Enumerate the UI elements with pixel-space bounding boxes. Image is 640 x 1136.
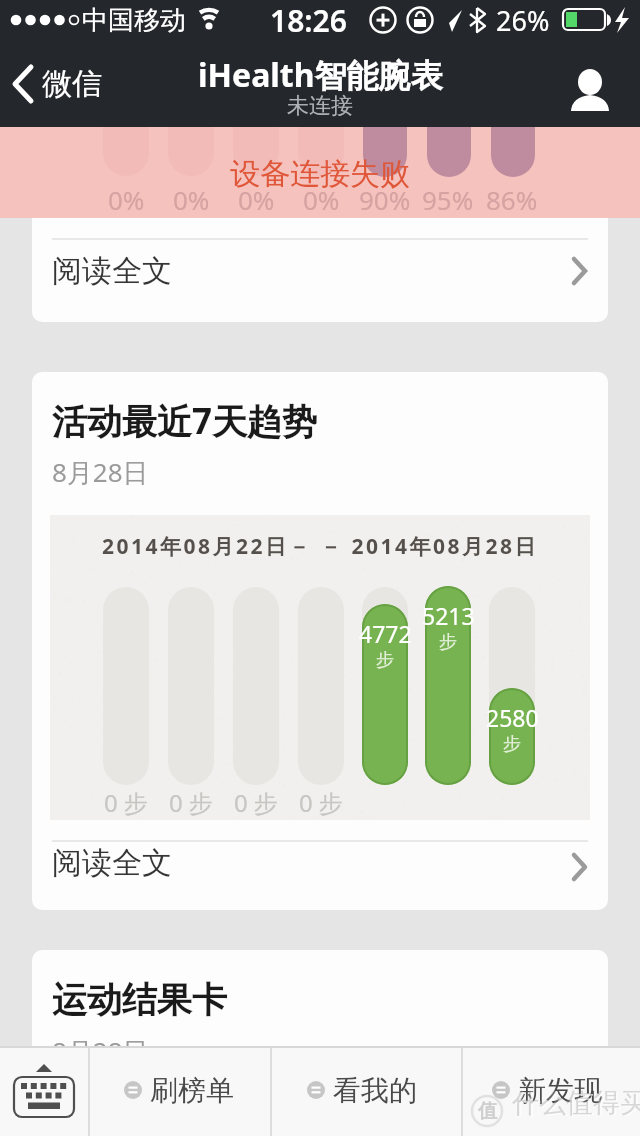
button[interactable]: 刷榜单 [123, 1058, 234, 1122]
staticText: 0% [238, 182, 275, 217]
staticText: 看我的 [333, 1073, 417, 1108]
staticText: 0 步 [234, 786, 278, 819]
staticText: 0% [173, 182, 210, 217]
button[interactable]: 阅读全文 [32, 842, 608, 894]
staticText: 步 [439, 631, 457, 654]
staticText: 2580 [486, 702, 539, 733]
staticText: 4772 [359, 618, 412, 649]
button[interactable]: 微信 [10, 40, 102, 127]
staticText: 0 步 [299, 786, 343, 819]
staticText: 86% [486, 182, 538, 217]
staticText: 运动结果卡 [52, 978, 227, 1022]
staticText: 8月28日 [52, 1033, 149, 1069]
staticText: 什么值得买 [514, 1087, 640, 1121]
staticText: 阅读全文 [52, 844, 172, 882]
staticText: 阅读全文 [52, 252, 172, 290]
staticText: 刷榜单 [150, 1073, 234, 1108]
staticText: 微信 [42, 65, 102, 103]
staticText: 0% [303, 182, 340, 217]
staticText: 未连接 [287, 92, 353, 120]
staticText: 中国移动 [82, 4, 186, 37]
staticText: 90% [359, 182, 411, 217]
button[interactable] [0, 1046, 88, 1136]
staticText: 什么值得买 [512, 1086, 640, 1120]
staticText: 值 [478, 1099, 497, 1123]
staticText: 26% [496, 2, 550, 39]
button[interactable]: 新发现 [491, 1058, 602, 1122]
staticText: iHealth智能腕表 [198, 53, 443, 97]
staticText: 步 [376, 649, 394, 672]
staticText: 0 步 [104, 786, 148, 819]
button[interactable]: 阅读全文 [32, 240, 608, 304]
button[interactable]: 看我的 [306, 1058, 417, 1122]
staticText: 5213 [422, 600, 475, 631]
staticText: 0% [108, 182, 145, 217]
staticText: 2014年08月22日－ － 2014年08月28日 [102, 532, 539, 561]
staticText: 8月28日 [52, 454, 149, 490]
staticText: 活动最近7天趋势 [52, 397, 318, 445]
staticText: 0 步 [169, 786, 213, 819]
staticText: 设备连接失败 [230, 155, 410, 193]
button[interactable] [560, 60, 620, 120]
staticText: 步 [503, 733, 521, 756]
staticText: 18:26 [270, 0, 347, 41]
staticText: 新发现 [518, 1073, 602, 1108]
staticText: 95% [422, 182, 474, 217]
